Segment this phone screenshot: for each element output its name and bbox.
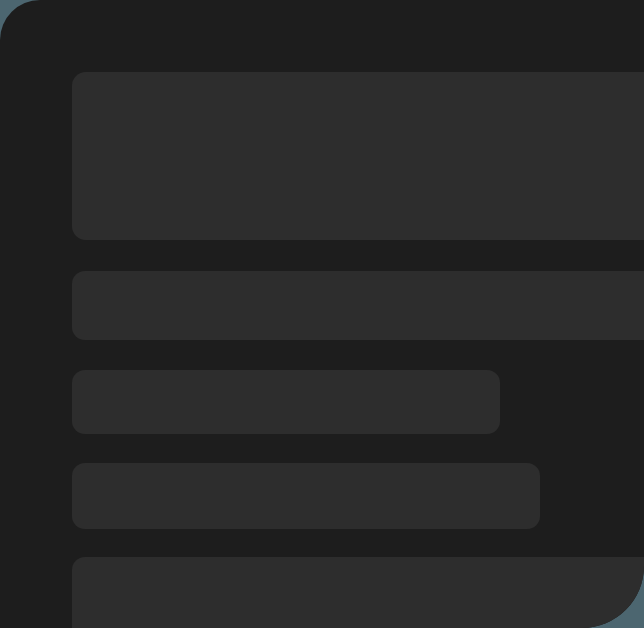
button[interactable]: Loading item (72, 557, 644, 628)
